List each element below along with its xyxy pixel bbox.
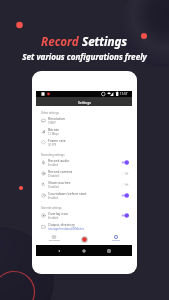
button[interactable]: Show touches xyxy=(36,179,132,190)
button[interactable]: Recordings xyxy=(48,235,60,243)
staticText: Countdown before start xyxy=(48,191,87,196)
button[interactable]: Countdown before start xyxy=(36,190,132,201)
staticText: 30 FPS xyxy=(48,143,57,147)
staticText: Enabled xyxy=(48,196,59,200)
button[interactable]: Recents xyxy=(107,249,111,253)
staticText: Record audio xyxy=(48,158,70,163)
staticText: 11:57 xyxy=(120,92,128,96)
staticText: Settings xyxy=(79,34,128,50)
button[interactable]: Resolution xyxy=(36,115,132,126)
staticText: General settings xyxy=(41,206,62,210)
staticText: Output directory xyxy=(48,222,75,227)
button[interactable]: Record xyxy=(81,236,88,243)
staticText: Record camera xyxy=(48,169,73,174)
button[interactable]: Overlay icon xyxy=(36,210,132,221)
staticText: Enabled xyxy=(48,163,59,167)
staticText: Settings xyxy=(78,100,91,104)
staticText: Recordings xyxy=(49,239,60,242)
button[interactable]: Record audio xyxy=(36,157,132,168)
staticText: 12 Mbps xyxy=(48,132,59,136)
staticText: Frame rate xyxy=(48,138,66,143)
staticText: Video settings xyxy=(41,111,59,115)
staticText: /storage/emulated/0/Movies xyxy=(48,227,85,231)
staticText: Disabled xyxy=(48,185,59,189)
button[interactable]: Settings xyxy=(110,235,122,243)
staticText: 1080P xyxy=(48,121,56,125)
staticText: Record xyxy=(41,34,79,50)
staticText: Enabled xyxy=(48,216,59,220)
staticText: Set various configurations freely xyxy=(22,51,147,62)
button[interactable]: Record camera xyxy=(36,168,132,179)
button[interactable]: Frame rate xyxy=(36,137,132,148)
button[interactable]: Back xyxy=(57,249,61,253)
staticText: Settings xyxy=(112,239,120,242)
button[interactable]: Output directory xyxy=(36,221,132,232)
staticText: Overlay icon xyxy=(48,211,68,216)
staticText: Show touches xyxy=(48,180,71,185)
staticText: Resolution xyxy=(48,116,66,121)
button[interactable]: Bitrate xyxy=(36,126,132,137)
staticText: Bitrate xyxy=(48,127,59,132)
staticText: Disabled xyxy=(48,174,59,178)
staticText: Recording settings xyxy=(41,153,65,157)
button[interactable]: Home xyxy=(82,249,86,253)
